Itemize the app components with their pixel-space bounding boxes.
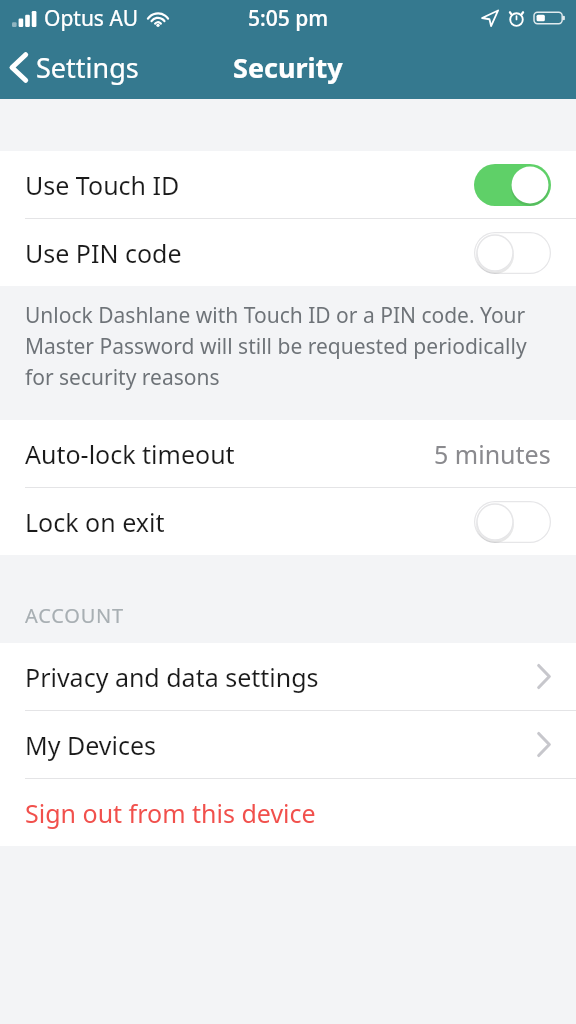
staticText: Auto-lock timeout	[25, 437, 235, 471]
button[interactable]: Auto-lock timeout	[0, 420, 576, 487]
staticText: Security	[233, 49, 343, 86]
staticText: My Devices	[25, 728, 157, 762]
button[interactable]: Sign out from this device	[0, 779, 576, 846]
button[interactable]: Use Touch ID	[0, 151, 576, 218]
button[interactable]: Lock on exit	[0, 488, 576, 555]
button[interactable]: Toggle off	[474, 232, 551, 274]
staticText: Privacy and data settings	[25, 660, 319, 694]
staticText: Use Touch ID	[25, 168, 180, 202]
staticText: ACCOUNT	[25, 602, 125, 629]
staticText: Unlock Dashlane with Touch ID or a PIN c…	[25, 301, 536, 391]
button[interactable]: Privacy and data settings	[0, 643, 576, 710]
button[interactable]: Toggle on	[474, 164, 551, 206]
button[interactable]: Use PIN code	[0, 219, 576, 286]
staticText: Lock on exit	[25, 505, 165, 539]
staticText: Optus AU	[44, 4, 139, 33]
button[interactable]: My Devices	[0, 711, 576, 778]
staticText: 5 minutes	[434, 437, 551, 471]
staticText: 5:05 pm	[248, 4, 329, 33]
staticText: Sign out from this device	[25, 796, 316, 830]
button[interactable]: Settings	[0, 43, 153, 92]
staticText: Settings	[36, 49, 139, 86]
button[interactable]: Toggle off	[474, 501, 551, 543]
staticText: Use PIN code	[25, 236, 182, 270]
